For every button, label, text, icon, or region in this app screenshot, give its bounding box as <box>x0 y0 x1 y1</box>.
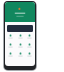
button[interactable]: Service <box>6 34 15 40</box>
button[interactable]: Service <box>25 52 34 58</box>
button[interactable]: Service <box>6 43 15 49</box>
button[interactable] <box>7 25 33 32</box>
button[interactable]: Service <box>16 34 25 40</box>
button[interactable]: Service <box>25 43 34 49</box>
button[interactable]: Service <box>16 52 25 58</box>
button[interactable]: Service <box>16 43 25 49</box>
button[interactable]: Service <box>25 34 34 40</box>
button[interactable]: Service <box>6 52 15 58</box>
